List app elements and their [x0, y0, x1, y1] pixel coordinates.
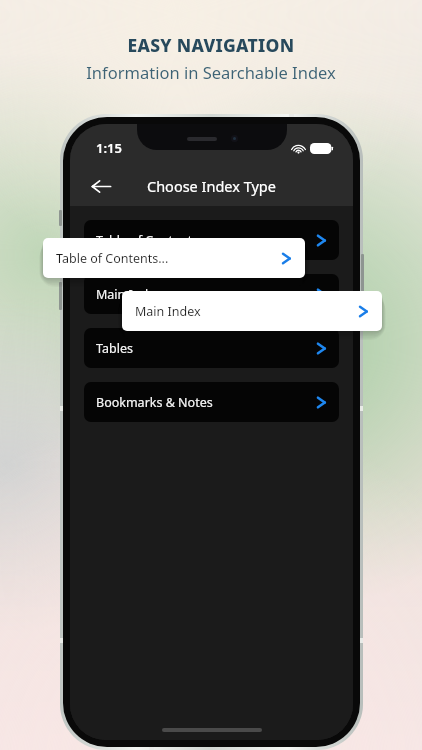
staticText: Table of Contents... — [56, 250, 169, 267]
staticText: Bookmarks & Notes — [96, 394, 213, 411]
staticText: Choose Index Type — [147, 176, 276, 196]
button[interactable]: Bookmarks & Notes — [84, 382, 339, 422]
staticText: Table of Contents... — [96, 232, 209, 249]
button[interactable]: Back — [84, 169, 118, 203]
button[interactable]: Table of Contents... — [84, 220, 339, 260]
staticText: Main Index — [96, 286, 162, 303]
staticText: Information in Searchable Index — [86, 61, 336, 83]
button[interactable]: Main Index — [122, 291, 382, 331]
staticText: Main Index — [135, 303, 201, 320]
button[interactable]: Table of Contents... — [43, 238, 305, 278]
staticText: Tables — [96, 340, 133, 357]
button[interactable]: Main Index — [84, 274, 339, 314]
button[interactable]: Tables — [84, 328, 339, 368]
staticText: 1:15 — [96, 139, 122, 157]
staticText: EASY NAVIGATION — [127, 33, 295, 57]
